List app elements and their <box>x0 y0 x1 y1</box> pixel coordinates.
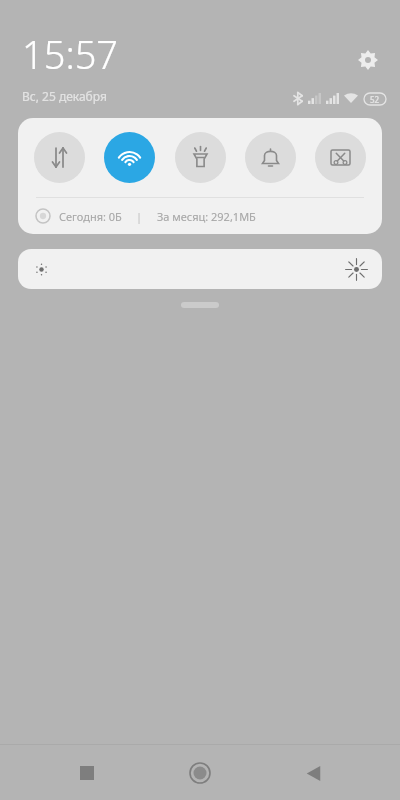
button[interactable]: Brightness <box>18 249 382 289</box>
button[interactable]: Flashlight <box>175 132 226 183</box>
button[interactable]: Ringtone <box>245 132 296 183</box>
button[interactable]: Back <box>287 747 339 799</box>
staticText: За месяц: 292,1МБ <box>157 209 256 224</box>
staticText: | <box>136 209 143 224</box>
staticText: 52 <box>370 94 380 105</box>
staticText: 15:57 <box>22 28 119 80</box>
button[interactable]: Settings <box>352 44 384 76</box>
button[interactable]: Wi-Fi <box>104 132 155 183</box>
staticText: Вс, 25 декабря <box>22 88 107 104</box>
button[interactable]: Mobile data <box>34 132 85 183</box>
button[interactable]: Recents <box>61 747 113 799</box>
staticText: Сегодня: 0Б <box>59 209 122 224</box>
button[interactable]: Screenshot <box>315 132 366 183</box>
button[interactable]: Expand <box>181 302 219 308</box>
button[interactable]: Сегодня: 0Б <box>18 198 382 234</box>
button[interactable]: Home <box>174 747 226 799</box>
